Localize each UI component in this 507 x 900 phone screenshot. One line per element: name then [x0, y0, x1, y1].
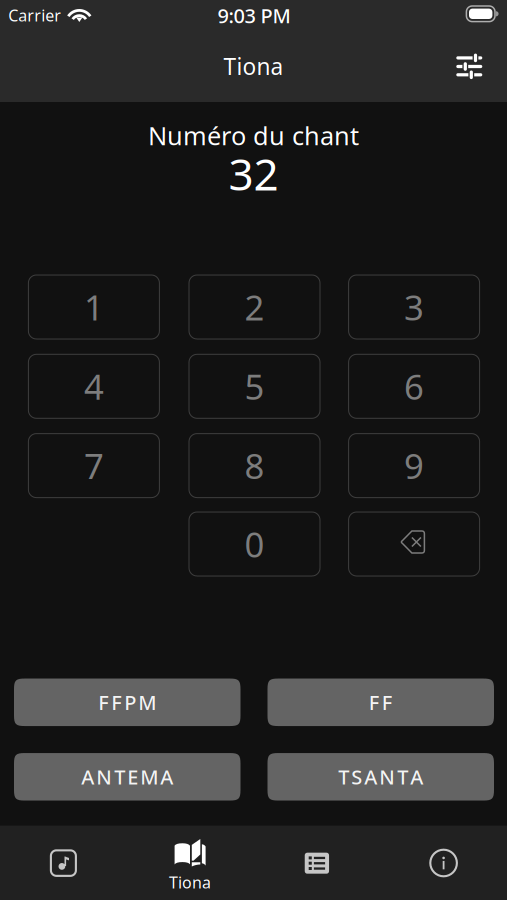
staticText: Tiona: [169, 872, 211, 893]
staticText: 9: [404, 443, 424, 489]
staticText: 7: [84, 443, 104, 489]
button[interactable]: 3: [349, 275, 480, 339]
staticText: 0: [244, 521, 264, 567]
staticText: 8: [244, 443, 264, 489]
button[interactable]: F F: [267, 678, 494, 726]
staticText: Tiona: [223, 51, 283, 81]
staticText: 4: [84, 363, 104, 409]
button[interactable]: Delete: [349, 512, 480, 576]
staticText: 1: [84, 284, 104, 330]
staticText: F F: [369, 689, 393, 716]
staticText: Numéro du chant: [148, 119, 359, 152]
button[interactable]: 1: [28, 275, 159, 339]
staticText: 5: [244, 363, 264, 409]
button[interactable]: Hira: [0, 826, 127, 900]
staticText: Carrier: [8, 5, 61, 26]
button[interactable]: 8: [189, 434, 320, 498]
staticText: T S A N T A: [338, 763, 423, 790]
staticText: 9:03 PM: [217, 2, 290, 29]
button[interactable]: 6: [349, 354, 480, 418]
button[interactable]: 7: [28, 434, 159, 498]
button[interactable]: 5: [189, 354, 320, 418]
staticText: 6: [404, 363, 424, 409]
staticText: 32: [228, 144, 278, 203]
button[interactable]: 0: [189, 512, 320, 576]
button[interactable]: Settings: [447, 44, 491, 88]
button[interactable]: 4: [28, 354, 159, 418]
staticText: F F P M: [98, 689, 156, 716]
button[interactable]: 2: [189, 275, 320, 339]
button[interactable]: Information: [380, 826, 507, 900]
button[interactable]: Lisitra: [253, 826, 380, 900]
button[interactable]: T S A N T A: [267, 753, 494, 800]
staticText: A N T E M A: [81, 763, 173, 790]
staticText: 3: [404, 284, 424, 330]
staticText: 2: [244, 284, 264, 330]
button[interactable]: A N T E M A: [14, 753, 240, 800]
button[interactable]: Tiona: [127, 829, 253, 900]
button[interactable]: 9: [349, 434, 480, 498]
button[interactable]: F F P M: [14, 678, 240, 726]
